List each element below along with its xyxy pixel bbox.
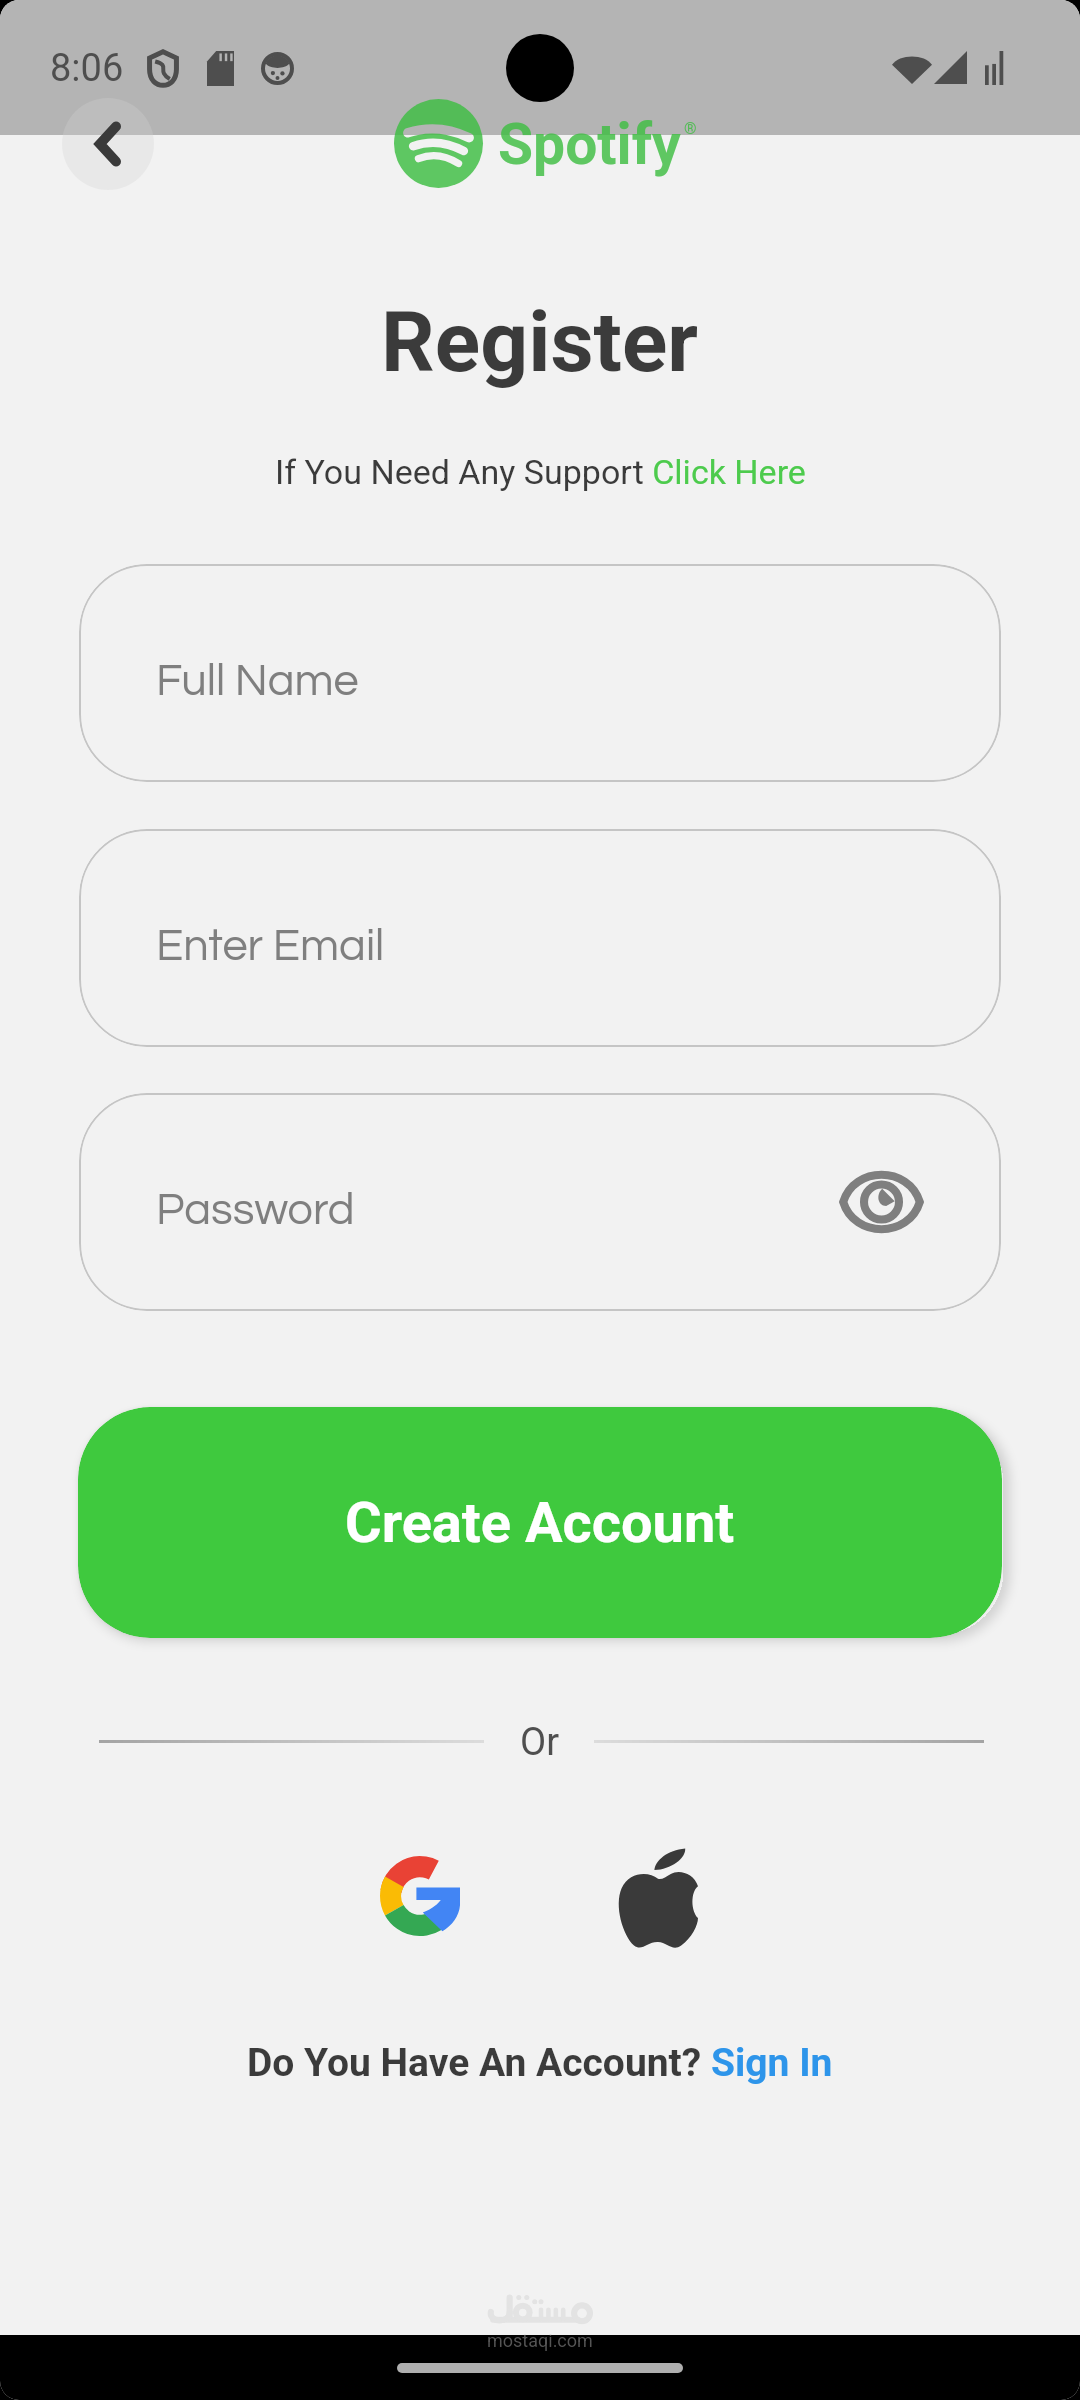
button[interactable]: Enter Email <box>79 829 1001 1047</box>
button[interactable]: Sign up with Google <box>380 1856 460 1936</box>
button[interactable]: If You Need Any Support Click Here <box>275 452 806 492</box>
button[interactable]: Back <box>62 98 154 190</box>
staticText: Password <box>156 1187 355 1233</box>
staticText: mostaqi.com <box>487 2330 593 2351</box>
staticText: ® <box>684 119 697 138</box>
staticText: Do You Have An Account? <box>247 2040 711 2086</box>
button[interactable]: Password <box>79 1093 1001 1311</box>
button[interactable]: Sign In <box>711 2040 833 2086</box>
button[interactable]: Show password <box>827 1148 935 1256</box>
staticText: If You Need Any Support Click Here <box>275 452 806 492</box>
button[interactable]: Create Account <box>78 1407 1002 1638</box>
staticText: 8:06 <box>50 46 124 91</box>
staticText: Spotify <box>498 111 681 178</box>
staticText: mostaqi.com <box>487 2335 593 2351</box>
staticText: Enter Email <box>156 923 385 969</box>
staticText: Sign In <box>711 2040 833 2086</box>
staticText: Full Name <box>156 658 359 704</box>
staticText: Create Account <box>345 1490 735 1556</box>
button[interactable]: Sign up with Apple <box>618 1848 698 1946</box>
staticText: Or <box>520 1720 560 1765</box>
button[interactable]: Full Name <box>79 564 1001 782</box>
staticText: Register <box>381 293 699 391</box>
